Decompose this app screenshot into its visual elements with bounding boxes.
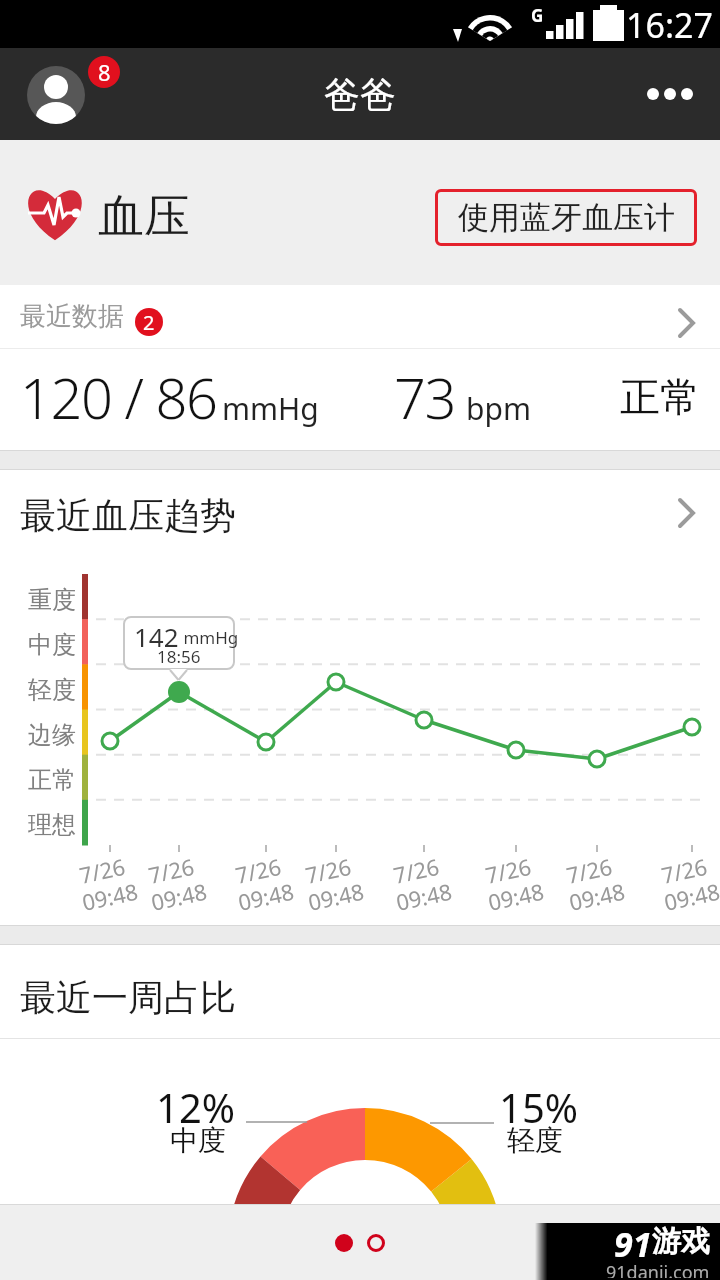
button[interactable]: 使用蓝牙血压计 [435, 189, 697, 246]
button[interactable] [27, 66, 85, 124]
staticText: 最近血压趋势 [20, 493, 236, 538]
staticText: 8 [98, 57, 111, 87]
button[interactable] [367, 1234, 385, 1252]
staticText: 91 [614, 1221, 652, 1261]
staticText: 2 [143, 309, 155, 336]
staticText: 最近数据 [20, 300, 124, 333]
button[interactable] [335, 1234, 353, 1252]
button[interactable] [638, 74, 700, 114]
staticText: 使用蓝牙血压计 [458, 198, 675, 237]
button[interactable]: 最近血压趋势 [0, 470, 720, 545]
staticText: mmHg [222, 388, 319, 429]
staticText: 轻度 [507, 1123, 563, 1158]
staticText: 91danji.com [606, 1260, 710, 1278]
staticText: 爸爸 [324, 72, 396, 117]
staticText: 中度 [170, 1123, 226, 1158]
staticText: 16:27 [626, 2, 713, 46]
staticText: 12% [156, 1080, 235, 1130]
staticText: 120 / 86 [20, 359, 217, 435]
staticText: 游戏 [652, 1223, 710, 1260]
staticText: G [531, 4, 544, 24]
button[interactable]: 最近数据 [0, 285, 720, 348]
staticText: bpm [466, 388, 531, 429]
staticText: 15% [499, 1080, 578, 1130]
staticText: 最近一周占比 [20, 975, 236, 1020]
staticText: 血压 [98, 188, 190, 244]
staticText: 正常 [620, 372, 700, 422]
staticText: 73 [394, 359, 455, 435]
